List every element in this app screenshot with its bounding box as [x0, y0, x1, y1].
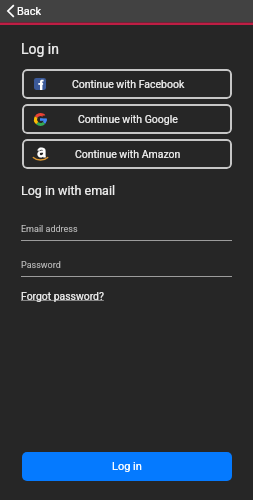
staticText: Log in: [112, 460, 142, 473]
staticText: Continue with Facebook: [72, 78, 185, 90]
button[interactable]: Continue with Google: [22, 104, 232, 134]
staticText: Forgot password?: [21, 290, 104, 302]
staticText: a: [37, 141, 47, 158]
staticText: Email address: [21, 224, 78, 235]
button[interactable]: Forgot password?: [21, 290, 104, 302]
staticText: Continue with Amazon: [75, 148, 181, 160]
button[interactable]: Log in: [22, 452, 232, 481]
staticText: Password: [21, 260, 61, 271]
staticText: Log in with email: [21, 183, 116, 198]
button[interactable]: Continue with Amazon: [22, 139, 232, 169]
button[interactable]: Back: [0, 0, 253, 22]
button[interactable]: Email address: [21, 224, 232, 241]
staticText: Continue with Google: [78, 113, 178, 125]
button[interactable]: Password: [21, 260, 232, 277]
button[interactable]: Continue with Facebook: [22, 69, 232, 99]
staticText: Log in: [21, 41, 59, 57]
staticText: Back: [17, 5, 42, 18]
